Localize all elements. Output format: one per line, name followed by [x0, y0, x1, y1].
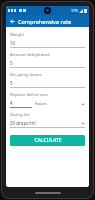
other: Expand [81, 103, 85, 106]
staticText: 20 drops/ml [10, 120, 36, 126]
button[interactable]: CALCULATE [10, 135, 85, 146]
button[interactable]: Back [6, 15, 18, 27]
staticText: 5 [10, 60, 13, 66]
staticText: Giving Set [10, 112, 30, 118]
button[interactable]: On-going losses [10, 72, 85, 92]
button[interactable]: Giving Set [10, 112, 85, 131]
staticText: Replace deficit over [10, 92, 49, 98]
other: Expand [81, 122, 85, 125]
staticText: On-going losses [10, 72, 42, 78]
staticText: 10 [10, 40, 16, 46]
staticText: hours [35, 101, 47, 107]
staticText: 5 [10, 80, 13, 86]
button[interactable]: Amount dehydrated [10, 52, 85, 72]
staticText: Amount dehydrated [10, 52, 50, 58]
staticText: 4 [10, 100, 13, 106]
staticText: CALCULATE [34, 137, 62, 144]
staticText: Comprehensive rate [18, 18, 72, 25]
button[interactable]: Replace deficit over [10, 92, 85, 112]
staticText: 17% [71, 8, 78, 13]
button[interactable]: Weight [10, 32, 85, 52]
staticText: Weight [10, 32, 24, 38]
